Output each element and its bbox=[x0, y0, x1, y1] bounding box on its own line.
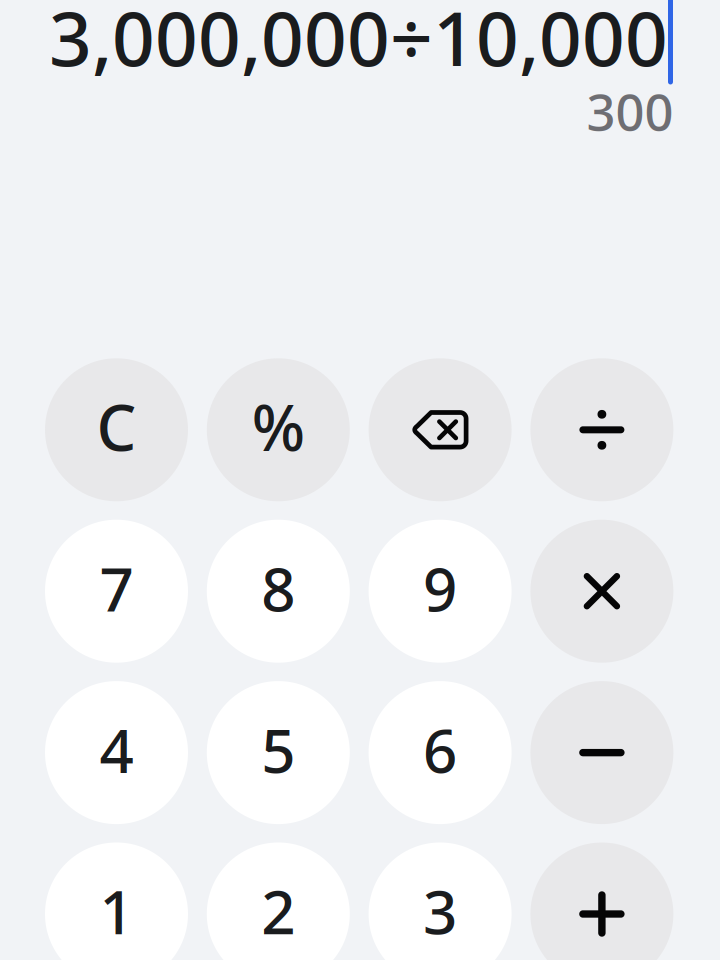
staticText: 2 bbox=[261, 871, 295, 951]
button[interactable]: 9 bbox=[369, 520, 512, 663]
staticText: 8 bbox=[261, 548, 295, 628]
button[interactable]: 1 bbox=[45, 842, 188, 960]
button[interactable]: 4 bbox=[45, 681, 188, 824]
button[interactable]: Delete bbox=[369, 358, 512, 501]
button[interactable]: Divide bbox=[530, 358, 673, 501]
button[interactable]: 3 bbox=[369, 842, 512, 960]
staticText: 3 bbox=[423, 871, 457, 951]
staticText: 1 bbox=[99, 871, 133, 951]
button[interactable]: C bbox=[45, 358, 188, 501]
staticText: % bbox=[252, 385, 305, 468]
button[interactable]: Minus bbox=[530, 681, 673, 824]
button[interactable]: % bbox=[207, 358, 350, 501]
staticText: 300 bbox=[586, 77, 673, 145]
staticText: 3,000,000÷10,000 bbox=[49, 0, 668, 87]
button[interactable]: 6 bbox=[369, 681, 512, 824]
staticText: 7 bbox=[99, 548, 133, 628]
staticText: 4 bbox=[99, 710, 133, 789]
button[interactable]: 8 bbox=[207, 520, 350, 663]
button[interactable]: Plus bbox=[530, 842, 673, 960]
staticText: 5 bbox=[261, 710, 295, 789]
staticText: 6 bbox=[423, 710, 457, 789]
button[interactable]: 5 bbox=[207, 681, 350, 824]
staticText: C bbox=[96, 385, 136, 468]
button[interactable]: 7 bbox=[45, 520, 188, 663]
staticText: 9 bbox=[423, 548, 457, 628]
button[interactable]: 2 bbox=[207, 842, 350, 960]
button[interactable]: Multiply bbox=[530, 520, 673, 663]
